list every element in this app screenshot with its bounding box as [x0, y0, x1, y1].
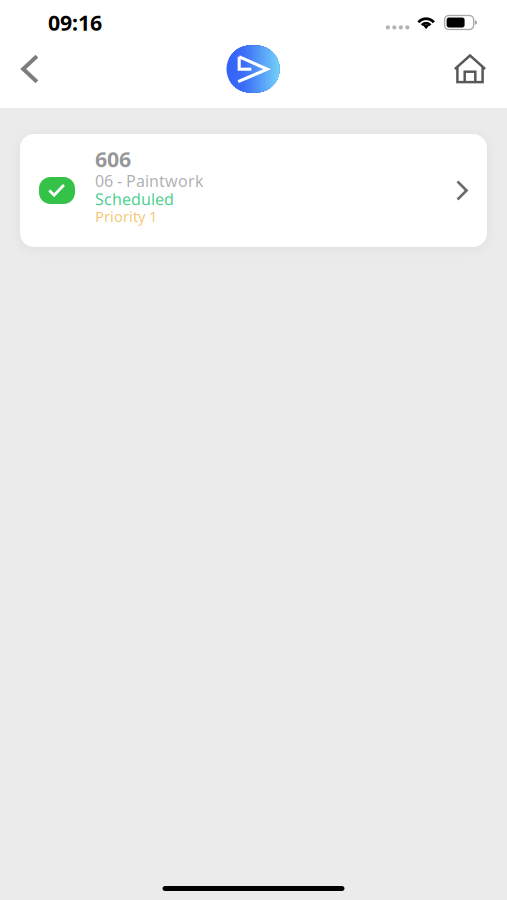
button[interactable]: Home [444, 37, 496, 100]
staticText: Priority 1 [95, 207, 157, 226]
button[interactable]: Back [4, 37, 56, 100]
staticText: 06 - Paintwork [95, 170, 204, 191]
staticText: 09:16 [48, 8, 102, 37]
button[interactable]: 606 [20, 134, 487, 247]
staticText: Scheduled [95, 188, 174, 210]
staticText: 606 [95, 145, 131, 173]
